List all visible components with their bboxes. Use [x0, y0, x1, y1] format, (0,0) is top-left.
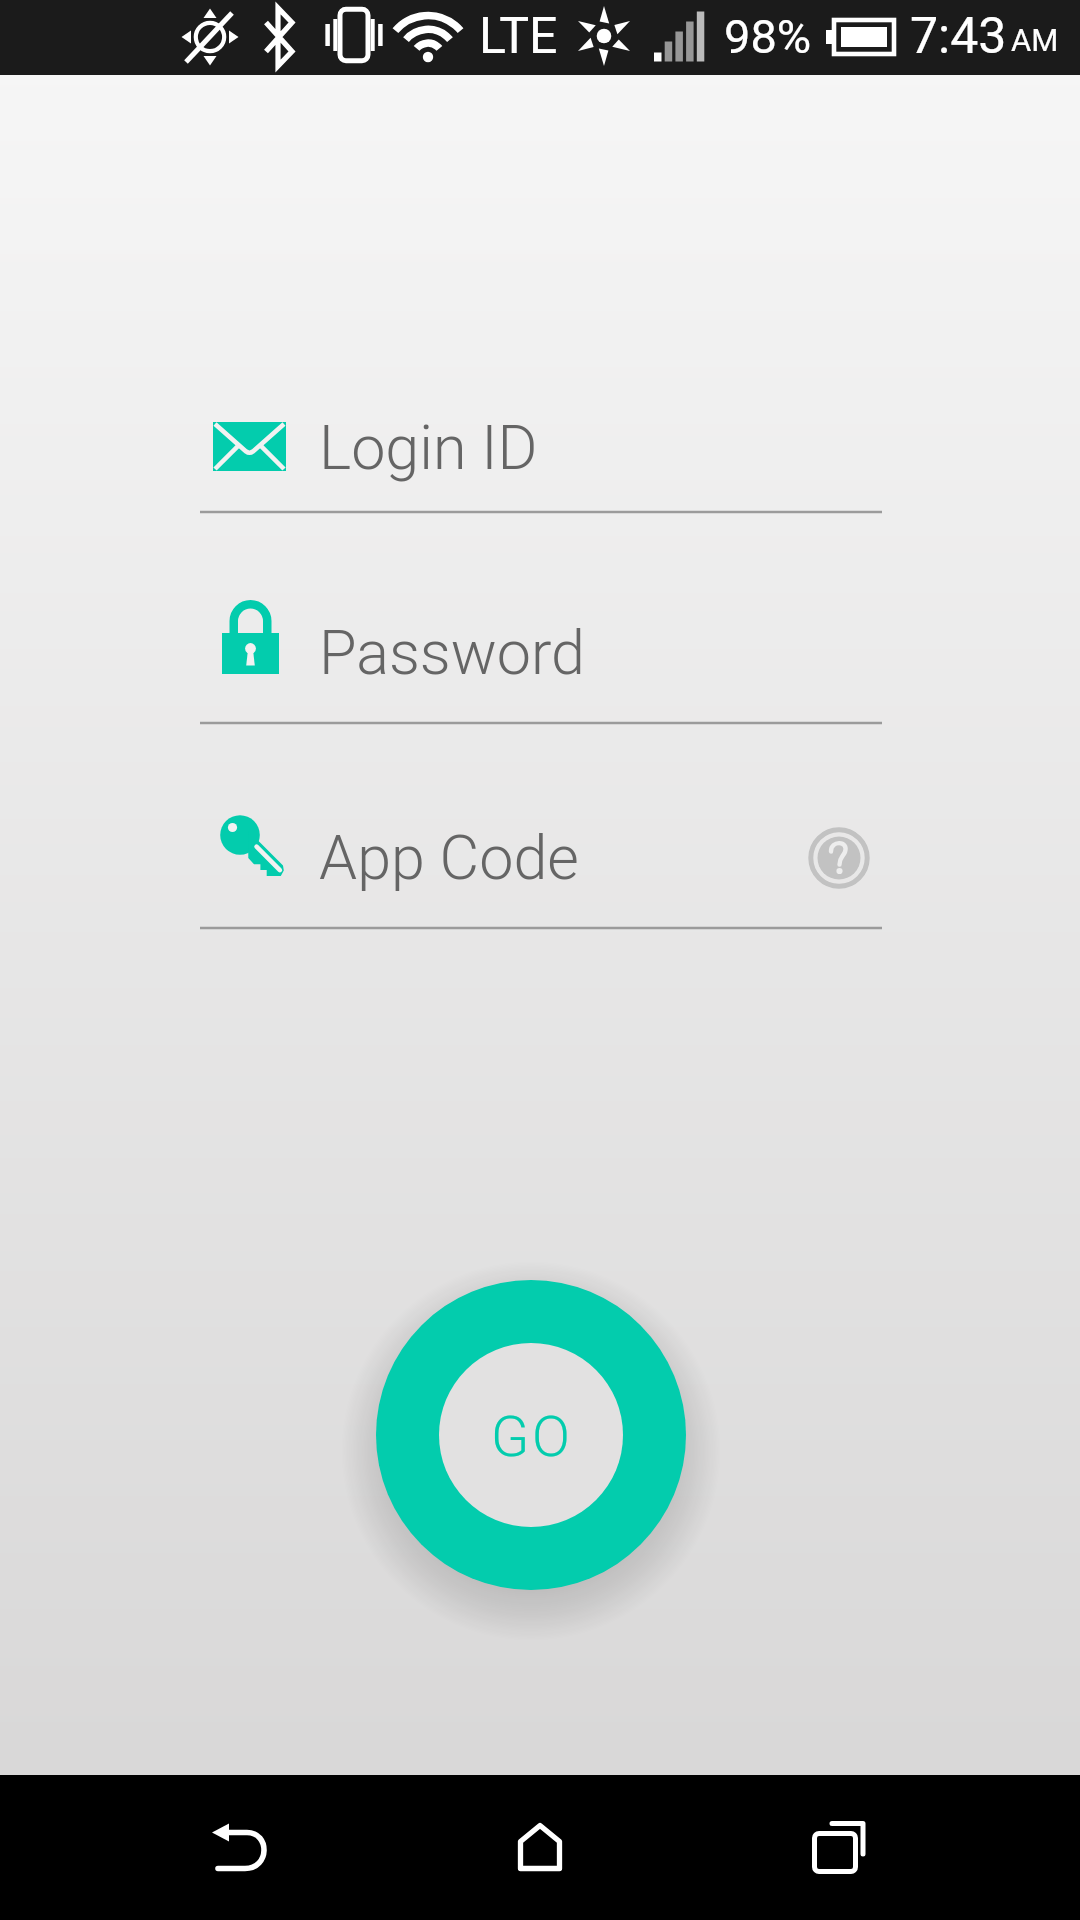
button[interactable]: App Code [200, 822, 882, 930]
staticText: 7:43 [910, 7, 1007, 66]
staticText: 98% [724, 9, 812, 64]
staticText: App Code [319, 822, 579, 893]
button[interactable]: Help [806, 825, 872, 891]
button[interactable]: Back [177, 1799, 297, 1896]
button[interactable]: Recent apps [780, 1799, 900, 1896]
button[interactable]: GO [366, 1270, 696, 1600]
button[interactable]: Home [480, 1799, 600, 1896]
staticText: Password [319, 617, 585, 688]
staticText: Login ID [319, 412, 538, 483]
button[interactable]: Login ID [200, 406, 882, 514]
staticText: AM [1011, 22, 1059, 58]
staticText: GO [491, 1404, 573, 1470]
staticText: LTE [479, 7, 558, 66]
button[interactable]: Password [200, 617, 882, 725]
